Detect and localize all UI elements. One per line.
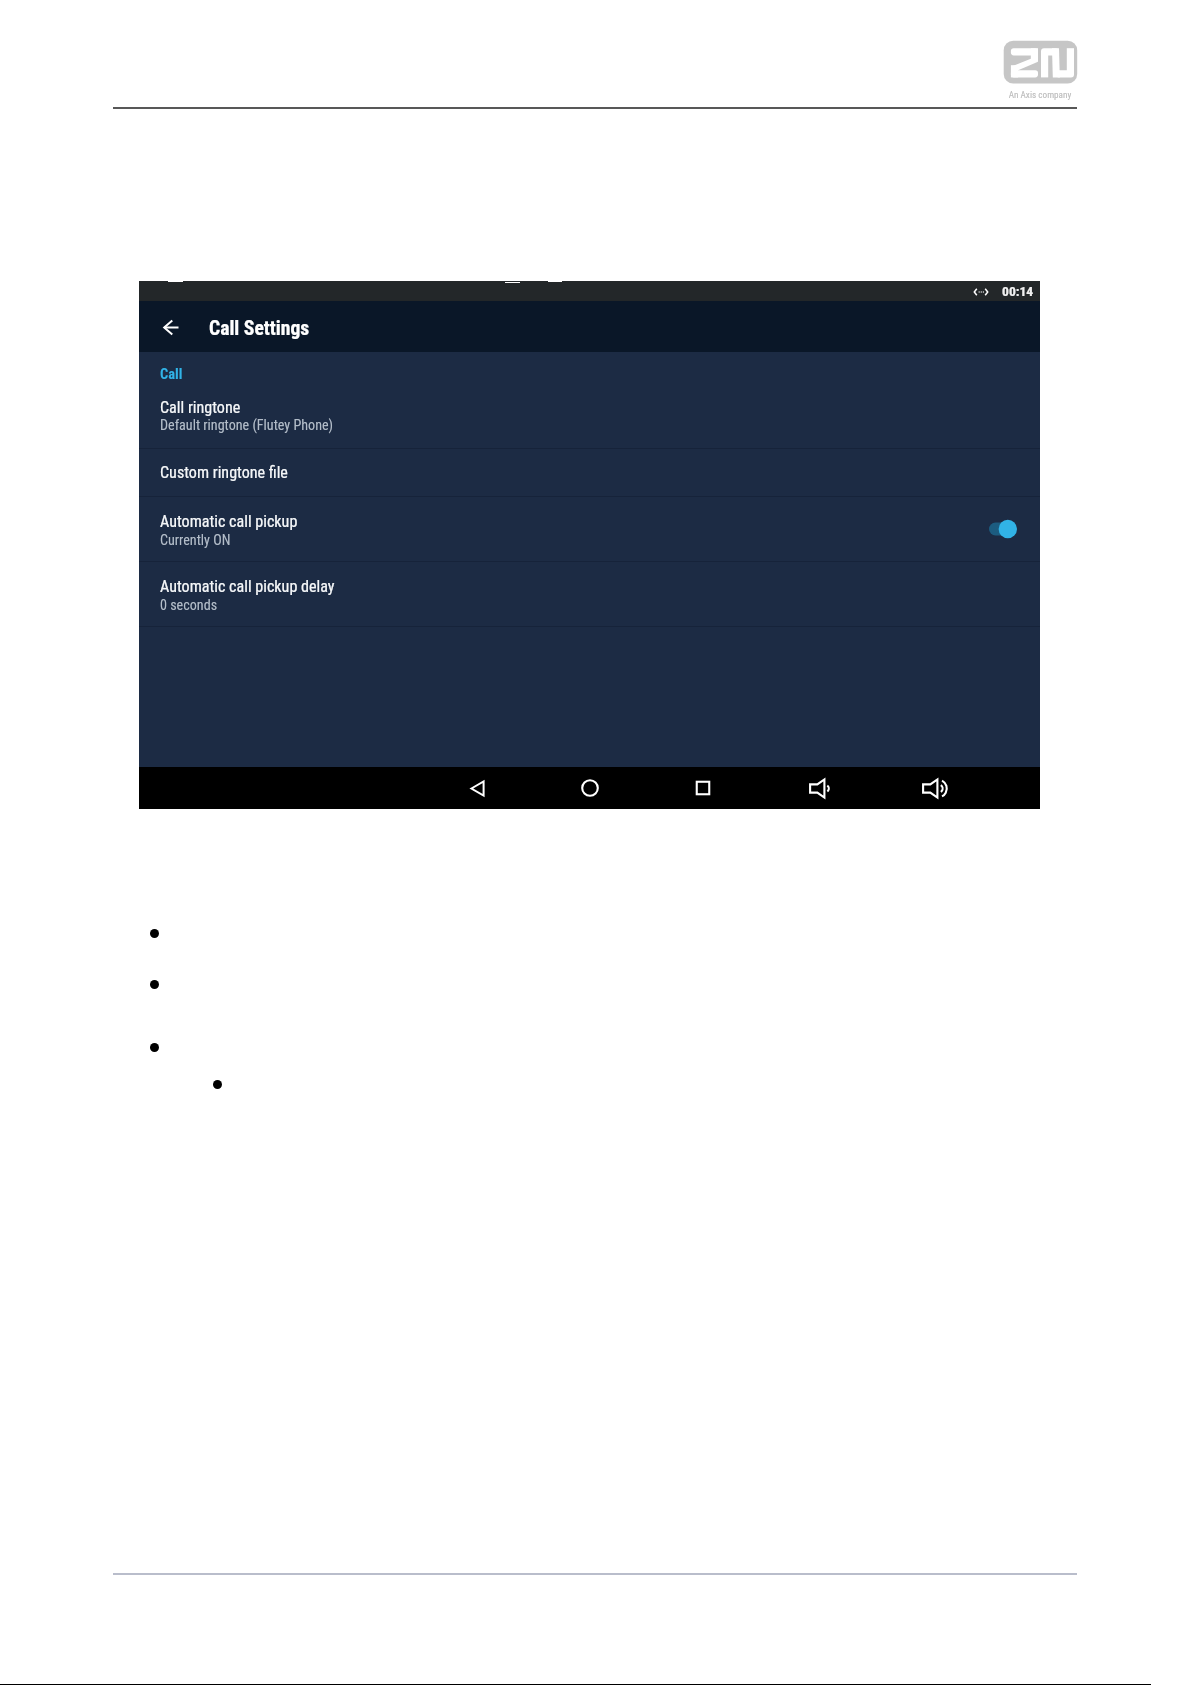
- button[interactable]: Recent apps: [682, 767, 724, 809]
- staticText: 00:14: [1002, 283, 1034, 299]
- staticText: Custom ringtone file: [160, 463, 288, 482]
- button[interactable]: Home: [569, 767, 611, 809]
- button[interactable]: Automatic call pickup, on: [982, 512, 1026, 546]
- button[interactable]: Volume up: [913, 767, 955, 809]
- button[interactable]: Volume down: [798, 767, 840, 809]
- staticText: Default ringtone (Flutey Phone): [160, 417, 334, 434]
- button[interactable]: Custom ringtone file: [139, 449, 1040, 496]
- button[interactable]: Navigate up: [150, 306, 192, 348]
- button[interactable]: Automatic call pickup: [139, 497, 1040, 561]
- staticText: 0 seconds: [160, 597, 218, 614]
- button[interactable]: Automatic call pickup delay: [139, 562, 1040, 626]
- staticText: Call: [160, 366, 183, 383]
- staticText: Call Settings: [209, 317, 310, 340]
- staticText: Call ringtone: [160, 398, 241, 417]
- button[interactable]: Call ringtone: [139, 394, 1040, 448]
- staticText: An Axis company: [1000, 89, 1080, 100]
- staticText: Currently ON: [160, 532, 231, 549]
- staticText: Automatic call pickup: [160, 512, 298, 531]
- staticText: Automatic call pickup delay: [160, 577, 335, 596]
- button[interactable]: Back: [456, 767, 498, 809]
